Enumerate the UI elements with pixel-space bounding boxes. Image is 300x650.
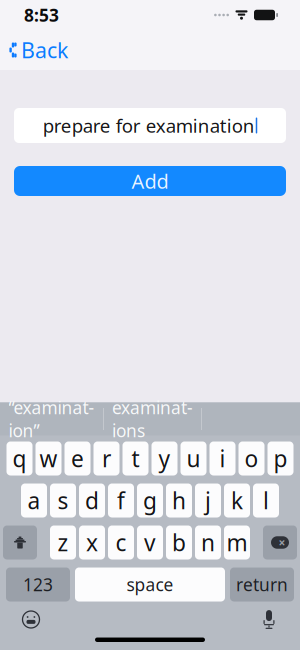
- button[interactable]: Back: [0, 29, 80, 71]
- staticText: l: [263, 485, 269, 515]
- button[interactable]: Dictation: [252, 603, 286, 635]
- button[interactable]: s: [50, 483, 76, 517]
- staticText: ×: [278, 534, 285, 550]
- button[interactable]: examinations: [104, 402, 201, 435]
- button[interactable]: h: [166, 483, 192, 517]
- staticText: o: [244, 443, 258, 473]
- staticText: m: [226, 527, 247, 557]
- staticText: c: [115, 527, 126, 557]
- staticText: w: [39, 443, 57, 473]
- staticText: y: [158, 443, 170, 473]
- staticText: r: [102, 443, 111, 473]
- staticText: h: [172, 485, 186, 515]
- staticText: space: [126, 573, 173, 596]
- staticText: Back: [21, 36, 68, 64]
- staticText: return: [236, 573, 288, 596]
- staticText: examinations: [112, 396, 193, 442]
- button[interactable]: q: [6, 441, 32, 475]
- button[interactable]: t: [122, 441, 148, 475]
- button[interactable]: l: [253, 483, 279, 517]
- staticText: s: [57, 485, 68, 515]
- staticText: b: [172, 527, 186, 557]
- button[interactable]: o: [238, 441, 264, 475]
- button[interactable]: f: [108, 483, 134, 517]
- button[interactable]: return: [230, 567, 294, 601]
- button[interactable]: m: [224, 525, 250, 559]
- staticText: e: [71, 443, 84, 473]
- staticText: v: [144, 527, 156, 557]
- button[interactable]: w: [35, 441, 61, 475]
- staticText: z: [57, 527, 68, 557]
- staticText: j: [205, 485, 211, 515]
- button[interactable]: n: [195, 525, 221, 559]
- staticText: “examination”: [8, 396, 94, 442]
- button[interactable]: c: [108, 525, 134, 559]
- button[interactable]: e: [64, 441, 90, 475]
- staticText: a: [27, 485, 40, 515]
- staticText: k: [231, 485, 243, 515]
- button[interactable]: “examination”: [0, 402, 103, 435]
- button[interactable]: k: [224, 483, 250, 517]
- button[interactable]: r: [93, 441, 119, 475]
- staticText: 8:53: [24, 3, 59, 26]
- staticText: x: [86, 527, 98, 557]
- button[interactable]: p: [267, 441, 293, 475]
- button[interactable]: Add: [0, 166, 300, 196]
- button[interactable]: space: [75, 567, 225, 601]
- staticText: d: [85, 485, 99, 515]
- button[interactable]: a: [21, 483, 47, 517]
- button[interactable]: z: [50, 525, 76, 559]
- button[interactable]: u: [180, 441, 206, 475]
- staticText: 123: [23, 573, 53, 596]
- button[interactable]: Delete: [263, 525, 297, 559]
- staticText: f: [117, 485, 125, 515]
- staticText: n: [201, 527, 215, 557]
- button[interactable]: b: [166, 525, 192, 559]
- button[interactable]: j: [195, 483, 221, 517]
- button[interactable]: x: [79, 525, 105, 559]
- staticText: g: [143, 485, 157, 515]
- button[interactable]: i: [209, 441, 235, 475]
- button[interactable]: d: [79, 483, 105, 517]
- staticText: q: [12, 443, 26, 473]
- button[interactable]: Shift: [3, 525, 37, 559]
- button[interactable]: 123: [6, 567, 70, 601]
- button[interactable]: y: [151, 441, 177, 475]
- staticText: Add: [131, 168, 168, 194]
- staticText: prepare for examination: [43, 113, 255, 138]
- button[interactable]: g: [137, 483, 163, 517]
- button[interactable]: v: [137, 525, 163, 559]
- staticText: u: [186, 443, 200, 473]
- staticText: p: [273, 443, 287, 473]
- button[interactable]: Emoji keyboard: [14, 603, 48, 635]
- staticText: t: [131, 443, 139, 473]
- staticText: i: [219, 443, 225, 473]
